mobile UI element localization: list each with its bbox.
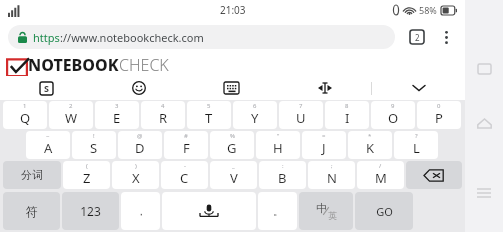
button[interactable]: 5 xyxy=(187,101,231,129)
button[interactable]: ( xyxy=(63,161,110,189)
button[interactable]: ~ xyxy=(26,131,70,159)
button[interactable]: Space, voice input xyxy=(162,192,256,230)
staticText: : xyxy=(282,162,284,170)
button[interactable]: ? xyxy=(394,131,438,159)
staticText: B xyxy=(278,169,287,187)
staticText: C xyxy=(180,169,189,187)
button[interactable]: * xyxy=(348,131,392,159)
staticText: _ xyxy=(232,162,235,170)
button[interactable]: 0 xyxy=(417,101,461,129)
button[interactable]: @ xyxy=(118,131,162,159)
staticText: ) xyxy=(135,162,137,170)
staticText: ( xyxy=(86,162,88,170)
button[interactable]: Keyboard layout xyxy=(185,76,278,100)
staticText: - xyxy=(184,162,186,170)
staticText: Q xyxy=(20,109,31,127)
staticText: 21:03 xyxy=(220,3,246,17)
staticText: G xyxy=(227,139,237,157)
staticText: 3 xyxy=(115,102,119,110)
staticText: / xyxy=(379,162,382,170)
staticText: 6 xyxy=(253,102,257,110)
staticText: 9 xyxy=(391,102,395,110)
button[interactable]: Menu xyxy=(467,176,501,210)
button[interactable]: Tabs, 2 open xyxy=(405,25,429,49)
button[interactable]: ， xyxy=(121,192,160,230)
button[interactable]: 8 xyxy=(325,101,369,129)
staticText: P xyxy=(435,109,443,127)
staticText: 2 xyxy=(69,102,73,110)
staticText: U xyxy=(296,109,306,127)
staticText: E xyxy=(113,109,121,127)
button[interactable]: 2 xyxy=(49,101,93,129)
button[interactable]: 符 xyxy=(3,192,60,230)
button[interactable]: More options xyxy=(435,26,457,48)
button[interactable]: Move cursor xyxy=(278,76,371,100)
staticText: V xyxy=(230,169,238,187)
staticText: I xyxy=(345,109,350,127)
button[interactable]: Recent apps xyxy=(467,52,501,86)
button[interactable]: Home xyxy=(467,106,501,140)
staticText: @ xyxy=(137,132,143,140)
button[interactable]: " xyxy=(256,131,300,159)
staticText: J xyxy=(322,139,326,157)
button[interactable]: Backspace xyxy=(406,161,462,189)
staticText: S xyxy=(90,139,98,157)
button[interactable]: 。 xyxy=(258,192,297,230)
button[interactable]: 分词 xyxy=(3,161,61,189)
staticText: ~ xyxy=(46,132,50,140)
staticText: 7 xyxy=(299,102,303,110)
staticText: K xyxy=(366,139,375,157)
staticText: # xyxy=(184,132,188,140)
button[interactable]: 1 xyxy=(3,101,47,129)
staticText: NOTEBOOK xyxy=(28,54,119,76)
button[interactable]: 9 xyxy=(371,101,415,129)
button[interactable]: 4 xyxy=(141,101,185,129)
button[interactable]: https xyxy=(8,25,395,49)
button[interactable]: ) xyxy=(112,161,159,189)
staticText: 58% xyxy=(419,4,437,16)
button[interactable]: # xyxy=(164,131,208,159)
staticText: 英 xyxy=(328,210,337,221)
button[interactable]: % xyxy=(210,131,254,159)
staticText: T xyxy=(205,109,213,127)
staticText: X xyxy=(132,169,140,187)
button[interactable]: : xyxy=(259,161,306,189)
button[interactable]: - xyxy=(161,161,208,189)
staticText: F xyxy=(183,139,190,157)
button[interactable]: Sogou input xyxy=(0,76,92,100)
button[interactable]: _ xyxy=(210,161,257,189)
staticText: 。 xyxy=(273,205,283,218)
button[interactable]: GO xyxy=(355,192,413,230)
button[interactable]: / xyxy=(357,161,404,189)
staticText: A xyxy=(44,139,53,157)
staticText: ? xyxy=(415,132,418,140)
staticText: S xyxy=(44,82,49,94)
button[interactable]: ! xyxy=(72,131,116,159)
staticText: O xyxy=(388,109,399,127)
button[interactable]: ; xyxy=(308,161,355,189)
button[interactable]: 123 xyxy=(62,192,119,230)
staticText: L xyxy=(413,139,420,157)
staticText: M xyxy=(375,169,387,187)
staticText: GO xyxy=(376,204,393,219)
button[interactable]: 3 xyxy=(95,101,139,129)
button[interactable]: Emoji xyxy=(92,76,185,100)
staticText: N xyxy=(327,169,337,187)
staticText: W xyxy=(65,109,78,127)
staticText: R xyxy=(159,109,168,127)
staticText: https xyxy=(33,30,60,45)
staticText: ， xyxy=(136,205,146,218)
button[interactable]: 6 xyxy=(233,101,277,129)
staticText: 分词 xyxy=(21,168,43,182)
staticText: 5 xyxy=(207,102,211,110)
button[interactable]: = xyxy=(302,131,346,159)
staticText: 2 xyxy=(415,32,420,43)
staticText: Z xyxy=(83,169,91,187)
staticText: " xyxy=(277,132,280,140)
staticText: CHECK xyxy=(119,54,169,76)
button[interactable]: 7 xyxy=(279,101,323,129)
button[interactable]: Hide keyboard xyxy=(372,76,465,100)
staticText: 4 xyxy=(161,102,165,110)
button[interactable]: 中 xyxy=(299,192,353,230)
staticText: 0 xyxy=(437,102,441,110)
